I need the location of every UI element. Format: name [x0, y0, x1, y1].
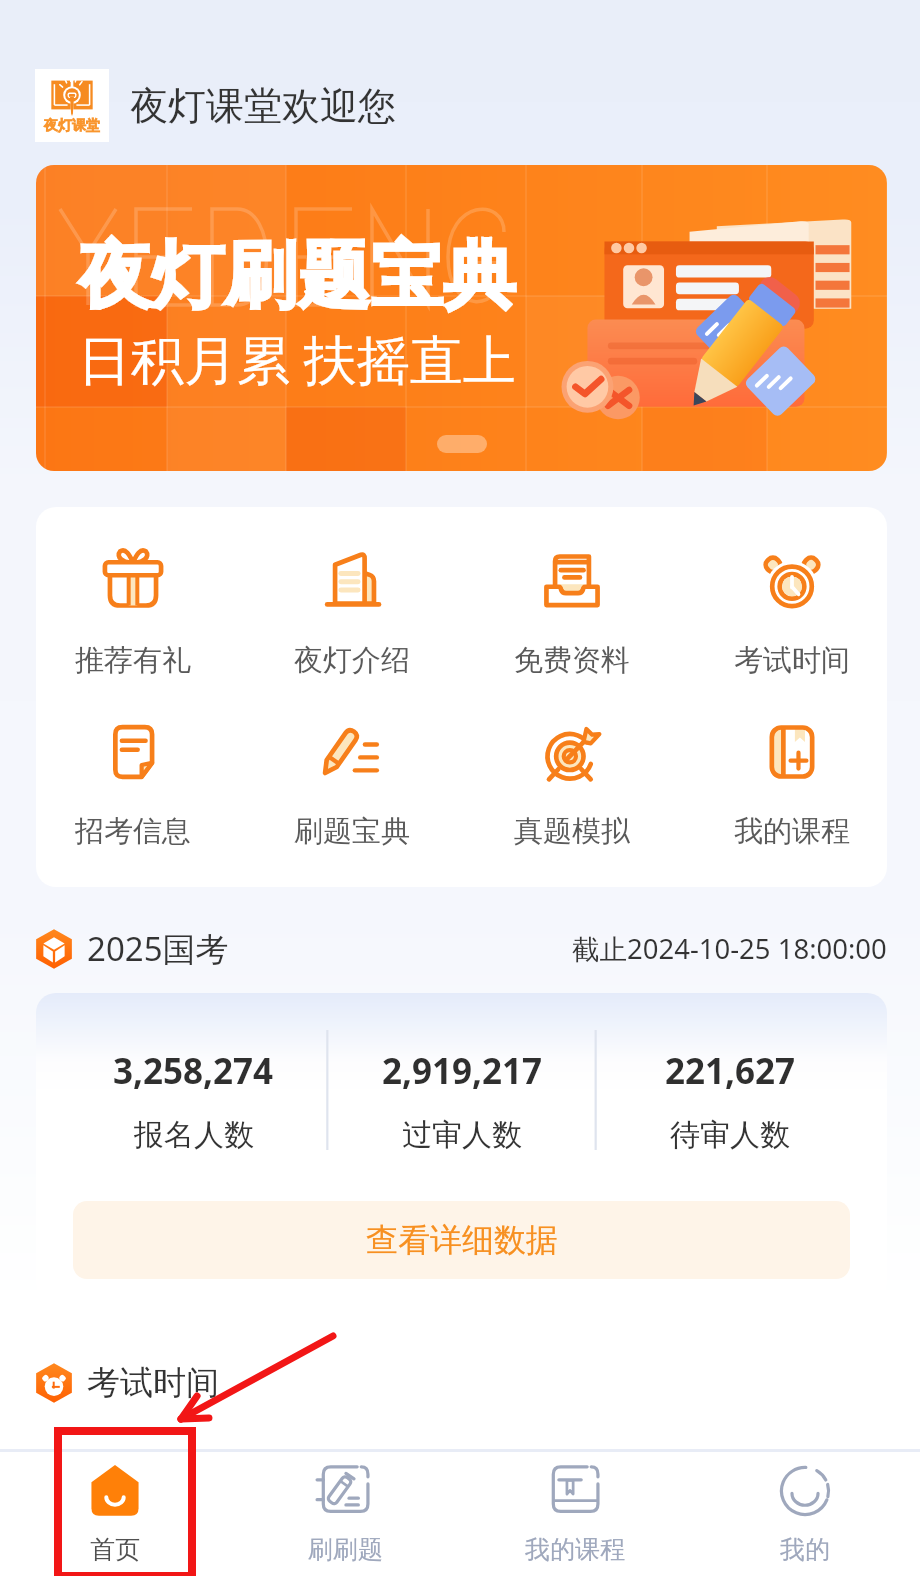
staticText: 考试时间 [87, 1362, 219, 1404]
button[interactable]: 考试时间 [0, 1327, 920, 1449]
button[interactable]: 我的课程 [460, 1449, 690, 1576]
staticText: 3,258,274 [113, 1047, 274, 1095]
staticText: 过审人数 [402, 1116, 522, 1150]
staticText: 报名人数 [134, 1116, 254, 1150]
staticText: 刷题宝典 [294, 813, 410, 850]
staticText: 查看详细数据 [366, 1220, 558, 1260]
button[interactable]: 招考信息 [36, 716, 242, 850]
button[interactable]: 我的课程 [682, 716, 887, 850]
staticText: 截止2024-10-25 18:00:00 [572, 930, 887, 968]
button[interactable]: 夜灯课堂 logo [35, 69, 109, 142]
button[interactable]: 夜灯刷题宝典 [36, 165, 887, 471]
staticText: 日积月累 扶摇直上 [78, 322, 516, 394]
staticText: 待审人数 [670, 1116, 790, 1150]
button[interactable]: 考试时间 [682, 545, 887, 679]
button[interactable]: 查看详细数据 [73, 1201, 850, 1279]
staticText: 夜灯刷题宝典 [78, 231, 516, 322]
button[interactable]: 刷题宝典 [242, 716, 462, 850]
button[interactable]: 夜灯介绍 [242, 545, 462, 679]
button[interactable]: 推荐有礼 [36, 545, 242, 679]
staticText: 夜灯课堂欢迎您 [130, 82, 396, 130]
button[interactable]: 2025国考 [0, 926, 920, 971]
staticText: 夜灯课堂 [44, 117, 100, 135]
staticText: 真题模拟 [514, 813, 630, 850]
staticText: 夜灯介绍 [294, 642, 410, 679]
staticText: 我的课程 [525, 1534, 625, 1565]
button[interactable]: 刷刷题 [230, 1449, 460, 1576]
staticText: 免费资料 [514, 642, 630, 679]
staticText: 2,919,217 [382, 1047, 543, 1095]
staticText: 招考信息 [75, 813, 191, 850]
staticText: 我的 [780, 1534, 830, 1565]
button[interactable]: 我的 [690, 1449, 920, 1576]
staticText: 2025国考 [87, 926, 229, 971]
button[interactable]: 免费资料 [462, 545, 682, 679]
staticText: 考试时间 [734, 642, 850, 679]
staticText: 刷刷题 [308, 1534, 383, 1565]
button[interactable]: 真题模拟 [462, 716, 682, 850]
staticText: 首页 [90, 1534, 140, 1565]
staticText: 推荐有礼 [75, 642, 191, 679]
staticText: 我的课程 [734, 813, 850, 850]
staticText: 221,627 [665, 1047, 796, 1095]
button[interactable]: 首页 [0, 1449, 230, 1576]
